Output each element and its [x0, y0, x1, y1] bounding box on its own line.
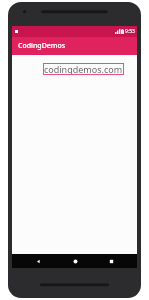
staticText: codingdemos.com — [44, 63, 123, 75]
staticText: CodingDemos — [18, 41, 66, 51]
button[interactable]: Recent apps — [100, 254, 122, 268]
button[interactable]: CodingDemos — [12, 37, 137, 55]
button[interactable]: Back — [27, 254, 49, 268]
staticText: 9:53 — [125, 28, 135, 35]
button[interactable]: Home — [64, 254, 86, 268]
button[interactable]: codingdemos.com — [44, 63, 123, 75]
